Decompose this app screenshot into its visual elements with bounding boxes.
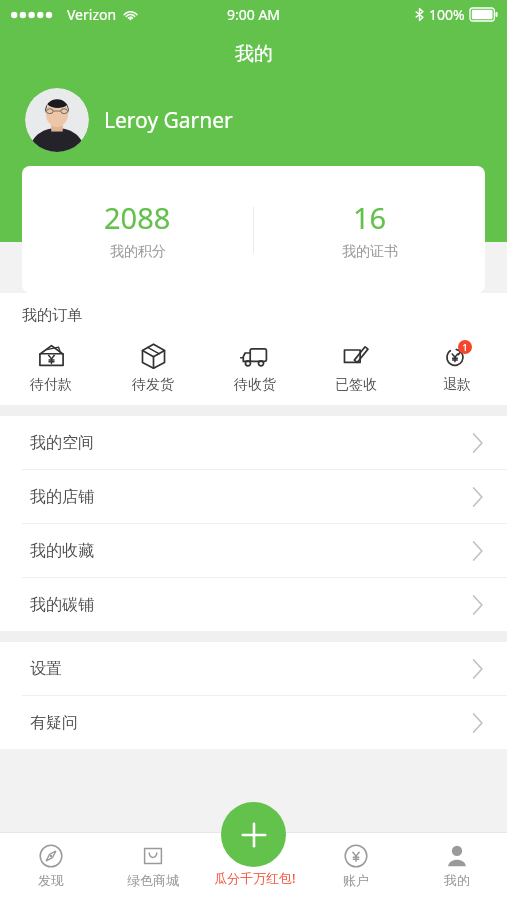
staticText: 设置	[30, 659, 62, 679]
staticText: 1	[462, 341, 468, 353]
staticText: 绿色商城	[127, 872, 179, 888]
staticText: 待付款	[30, 376, 72, 394]
staticText: 有疑问	[30, 713, 78, 733]
staticText: 我的收藏	[30, 541, 94, 561]
staticText: Verizon	[67, 5, 117, 24]
staticText: 我的空间	[30, 433, 94, 453]
button[interactable]: Add	[221, 802, 286, 867]
button[interactable]: 我的店铺	[0, 470, 507, 524]
staticText: 16	[353, 198, 387, 237]
button[interactable]: Leroy Garner	[25, 88, 233, 152]
staticText: 瓜分千万红包!	[214, 869, 296, 887]
staticText: 我的店铺	[30, 487, 94, 507]
staticText: 我的	[235, 42, 273, 66]
other: 发现	[39, 844, 63, 868]
staticText: 待收货	[234, 376, 276, 394]
staticText: 我的订单	[22, 306, 82, 325]
button[interactable]: 待付款	[0, 340, 102, 394]
button[interactable]: 我的空间	[0, 416, 507, 470]
staticText: 发现	[38, 872, 64, 888]
staticText: 2088	[104, 198, 171, 237]
button[interactable]: 2088	[22, 166, 253, 293]
staticText: 9:00 AM	[227, 5, 281, 24]
other: 账户	[344, 844, 368, 868]
staticText: 我的积分	[110, 243, 166, 261]
other: 我的	[445, 844, 469, 868]
button[interactable]: 发现	[0, 832, 102, 900]
staticText: 我的	[444, 872, 470, 888]
staticText: 待发货	[132, 376, 174, 394]
button[interactable]: 绿色商城	[102, 832, 204, 900]
button[interactable]: 待发货	[102, 340, 204, 394]
staticText: Leroy Garner	[104, 106, 233, 135]
button[interactable]: 瓜分千万红包	[204, 832, 305, 900]
staticText: 账户	[343, 872, 369, 888]
button[interactable]: 账户	[305, 832, 406, 900]
staticText: 我的证书	[342, 243, 398, 261]
other: 绿色商城	[141, 844, 165, 868]
staticText: 已签收	[335, 376, 377, 394]
button[interactable]: 待收货	[204, 340, 305, 394]
button[interactable]: 已签收	[305, 340, 406, 394]
button[interactable]: 有疑问	[0, 696, 507, 749]
button[interactable]: 设置	[0, 642, 507, 696]
button[interactable]: 我的碳铺	[0, 578, 507, 631]
staticText: 我的碳铺	[30, 595, 94, 615]
staticText: 退款	[443, 376, 471, 394]
button[interactable]: 我的	[406, 832, 507, 900]
staticText: 100%	[429, 5, 465, 24]
button[interactable]: 16	[254, 166, 485, 293]
button[interactable]: 1	[406, 340, 507, 394]
button[interactable]: 我的收藏	[0, 524, 507, 578]
